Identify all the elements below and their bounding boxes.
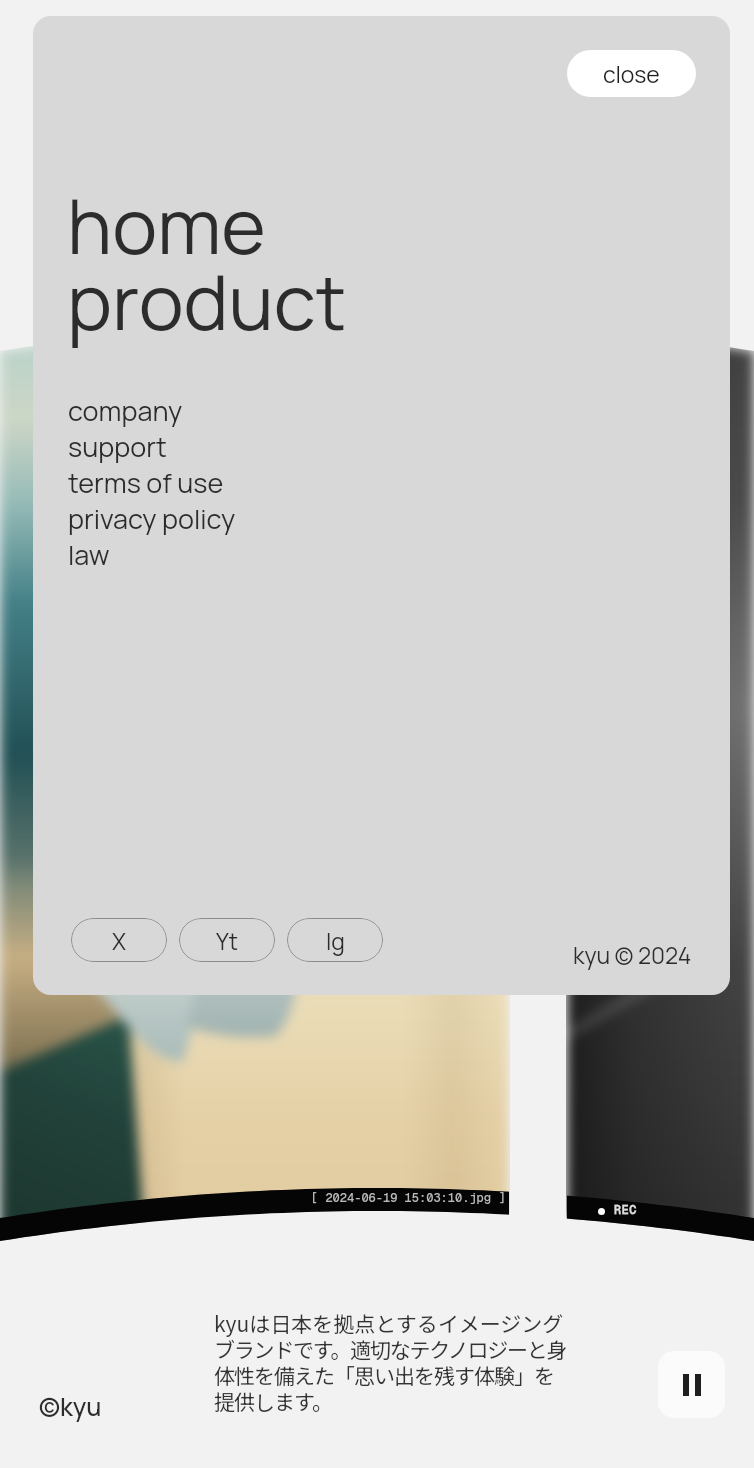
button[interactable]: Pause bbox=[658, 1351, 725, 1418]
button[interactable]: X bbox=[71, 918, 167, 962]
button[interactable]: terms of use bbox=[68, 464, 224, 501]
staticText: close bbox=[603, 58, 660, 89]
button[interactable]: close bbox=[567, 50, 696, 97]
button[interactable]: home bbox=[67, 173, 266, 277]
button[interactable]: law bbox=[68, 536, 110, 573]
button[interactable]: product bbox=[67, 249, 347, 353]
button[interactable]: Yt bbox=[179, 918, 275, 962]
staticText: REC bbox=[614, 1202, 637, 1218]
staticText: Ig bbox=[326, 925, 345, 956]
staticText: Yt bbox=[216, 925, 238, 956]
staticText: [ 2024-06-19 15:03:10.jpg ] bbox=[311, 1190, 506, 1206]
staticText: kyu © 2024 bbox=[573, 939, 692, 970]
button[interactable]: ©kyu bbox=[39, 1389, 102, 1423]
button[interactable]: Ig bbox=[287, 918, 383, 962]
staticText: ブランドです。適切なテクノロジーと身 bbox=[214, 1334, 567, 1364]
staticText: 提供します。 bbox=[214, 1386, 332, 1416]
staticText: 体性を備えた「思い出を残す体験」を bbox=[214, 1360, 554, 1390]
button[interactable]: privacy policy bbox=[68, 500, 236, 537]
button[interactable]: support bbox=[68, 428, 167, 465]
staticText: X bbox=[112, 925, 126, 956]
button[interactable]: company bbox=[68, 392, 183, 429]
staticText: kyuは日本を拠点とするイメージング bbox=[214, 1308, 564, 1338]
